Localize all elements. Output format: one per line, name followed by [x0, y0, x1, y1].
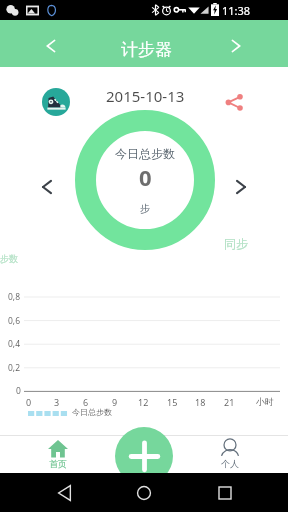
staticText: 2015-10-13 — [106, 86, 185, 106]
button[interactable]: 个人 — [196, 435, 264, 473]
staticText: 0,2 — [8, 362, 21, 374]
staticText: 同步 — [224, 236, 248, 251]
staticText: 今日总步数 — [72, 407, 112, 417]
staticText: 11:38 — [222, 3, 251, 18]
button[interactable]: Recents — [208, 476, 242, 510]
staticText: 21 — [224, 396, 235, 408]
staticText: 6 — [83, 396, 89, 408]
staticText: 0,8 — [8, 291, 21, 303]
staticText: 12 — [138, 396, 149, 408]
staticText: 首页 — [49, 458, 67, 469]
button[interactable]: 首页 — [24, 435, 92, 473]
button[interactable]: Profile — [42, 88, 70, 116]
staticText: 0 — [26, 396, 32, 408]
button[interactable]: Previous day — [33, 173, 61, 201]
staticText: 0,6 — [8, 315, 21, 327]
button[interactable]: Next day — [227, 173, 255, 201]
staticText: 今日总步数 — [115, 146, 175, 161]
button[interactable]: Add — [115, 427, 173, 485]
staticText: 0 — [16, 385, 21, 397]
button[interactable]: Back — [47, 476, 81, 510]
staticText: 0,4 — [8, 338, 21, 350]
staticText: 步 — [140, 202, 150, 215]
button[interactable]: Next — [221, 31, 251, 61]
staticText: 9 — [112, 396, 118, 408]
staticText: 15 — [167, 396, 178, 408]
button[interactable]: Home — [127, 476, 161, 510]
staticText: 0 — [139, 162, 152, 192]
staticText: 个人 — [221, 458, 239, 469]
button[interactable]: 同步 — [222, 236, 250, 251]
staticText: 计步器 — [121, 39, 172, 60]
staticText: 步数 — [0, 253, 18, 264]
staticText: 18 — [195, 396, 206, 408]
button[interactable]: Share — [222, 90, 246, 114]
staticText: 小时 — [256, 396, 274, 407]
staticText: 3 — [54, 396, 60, 408]
button[interactable]: Previous — [36, 31, 66, 61]
